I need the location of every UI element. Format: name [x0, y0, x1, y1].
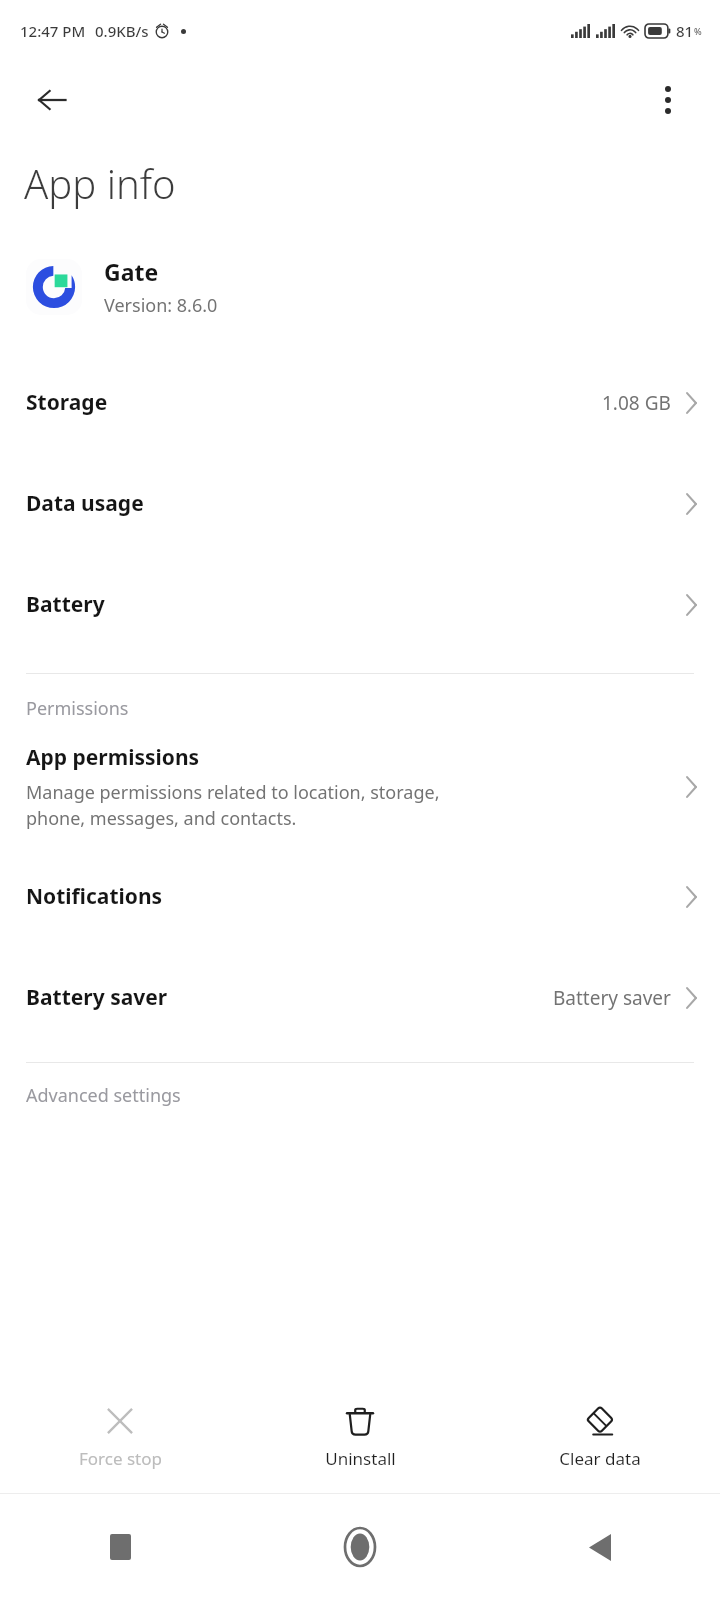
button[interactable]: Uninstall [240, 1396, 480, 1478]
staticText: Permissions [26, 696, 129, 721]
button[interactable]: Back [480, 1494, 720, 1600]
staticText: % [694, 25, 702, 37]
staticText: Battery [26, 590, 105, 619]
button[interactable]: Recent apps [0, 1494, 240, 1600]
staticText: 0.9KB/s [95, 21, 149, 41]
staticText: Battery saver [553, 985, 671, 1011]
staticText: Manage permissions related to location, … [26, 780, 440, 830]
staticText: App info [24, 156, 176, 210]
staticText: 81 [676, 21, 694, 41]
button[interactable]: Force stop [0, 1396, 240, 1478]
button[interactable]: Back [26, 74, 78, 126]
staticText: 1.08 GB [602, 390, 671, 416]
staticText: Gate [104, 256, 159, 287]
staticText: Storage [26, 388, 108, 417]
staticText: Battery saver [26, 983, 168, 1012]
staticText: Data usage [26, 489, 144, 518]
button[interactable]: Battery [0, 554, 720, 655]
staticText: 12:47 PM [20, 21, 86, 41]
staticText: Version: 8.6.0 [104, 293, 218, 318]
button[interactable]: App permissions [0, 727, 720, 846]
staticText: App permissions [26, 743, 200, 772]
button[interactable]: Gate [0, 252, 720, 322]
button[interactable]: Notifications [0, 846, 720, 947]
button[interactable]: Storage [0, 352, 720, 453]
button[interactable]: Data usage [0, 453, 720, 554]
button[interactable]: More options [642, 74, 694, 126]
staticText: Advanced settings [26, 1083, 181, 1108]
button[interactable]: Home [240, 1494, 480, 1600]
button[interactable]: Battery saver [0, 947, 720, 1048]
staticText: Clear data [559, 1447, 641, 1470]
staticText: Uninstall [325, 1447, 396, 1470]
button[interactable]: Clear data [480, 1396, 720, 1478]
staticText: Force stop [79, 1447, 162, 1470]
staticText: Notifications [26, 882, 163, 911]
